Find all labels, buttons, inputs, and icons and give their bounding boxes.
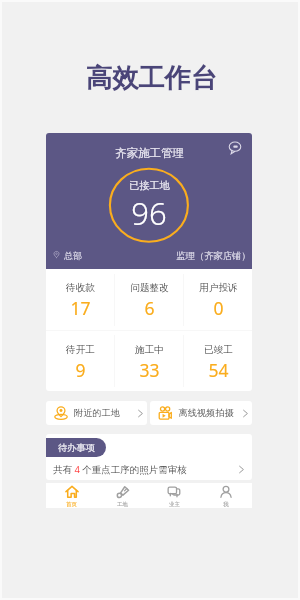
button[interactable]: 附近的工地 xyxy=(46,401,147,425)
staticText: 待开工 xyxy=(66,344,95,356)
button[interactable]: 待办事项 xyxy=(46,438,106,457)
button[interactable]: 我 xyxy=(200,483,252,508)
button[interactable]: 已竣工 xyxy=(184,331,252,391)
staticText: 共有 4 个重点工序的照片需审核 xyxy=(53,463,187,476)
staticText: 监理（齐家店铺） xyxy=(176,250,251,262)
staticText: 附近的工地 xyxy=(74,407,120,419)
staticText: 首页 xyxy=(66,501,77,508)
staticText: 33 xyxy=(139,358,160,382)
staticText: 施工中 xyxy=(135,344,164,356)
button[interactable]: 首页 xyxy=(46,483,97,508)
staticText: 用户投诉 xyxy=(199,282,238,294)
button[interactable]: 用户投诉 xyxy=(184,269,252,330)
staticText: 0 xyxy=(213,296,224,320)
staticText: 高效工作台 xyxy=(86,62,217,95)
staticText: 待办事项 xyxy=(58,442,95,454)
button[interactable]: 问题整改 xyxy=(115,269,183,330)
staticText: 总部 xyxy=(64,251,82,262)
button[interactable]: 待开工 xyxy=(46,331,114,391)
staticText: 17 xyxy=(70,296,91,320)
staticText: 已接工地 xyxy=(129,179,170,192)
staticText: 我 xyxy=(223,501,229,508)
staticText: 9 xyxy=(75,358,86,382)
staticText: 业主 xyxy=(169,501,180,508)
staticText: 问题整改 xyxy=(130,282,169,294)
button[interactable]: 业主 xyxy=(148,483,200,508)
staticText: 96 xyxy=(131,192,167,234)
button[interactable]: 施工中 xyxy=(115,331,183,391)
button[interactable]: 共有 4 个重点工序的照片需审核 xyxy=(46,457,252,480)
staticText: 已竣工 xyxy=(204,344,233,356)
staticText: 6 xyxy=(144,296,155,320)
staticText: 齐家施工管理 xyxy=(115,146,184,160)
button[interactable]: 消息 xyxy=(225,138,245,158)
staticText: 离线视频拍摄 xyxy=(178,407,234,419)
staticText: 待收款 xyxy=(66,282,95,294)
button[interactable]: 待收款 xyxy=(46,269,114,330)
staticText: 工地 xyxy=(117,501,128,508)
staticText: 54 xyxy=(208,358,229,382)
button[interactable]: 工地 xyxy=(97,483,148,508)
button[interactable]: 离线视频拍摄 xyxy=(150,401,252,425)
